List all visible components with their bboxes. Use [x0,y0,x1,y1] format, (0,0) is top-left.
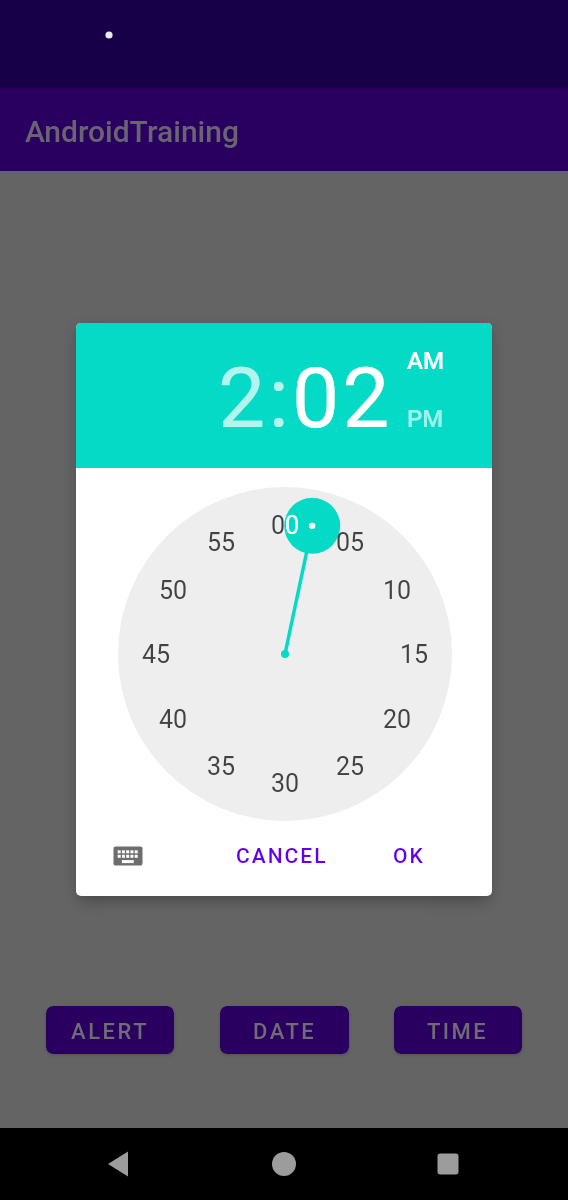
button[interactable] [260,1140,308,1188]
button[interactable] [109,837,147,875]
button[interactable]: PM [400,404,450,434]
staticText: PM [407,405,444,433]
staticText: 15 [400,640,429,669]
button[interactable]: TIME [394,1006,522,1054]
button[interactable] [95,1140,143,1188]
button[interactable]: OK [371,833,447,879]
staticText: OK [393,844,425,869]
staticText: AM [407,347,444,375]
button[interactable]: CANCEL [226,833,338,879]
staticText: AndroidTraining [25,114,239,149]
button[interactable]: DATE [220,1006,349,1054]
staticText: 20 [383,705,412,734]
staticText: 35 [207,752,236,781]
staticText: 05 [336,528,365,557]
staticText: 10 [383,576,412,605]
button[interactable]: AM [400,346,450,376]
button[interactable] [424,1140,472,1188]
staticText: 45 [142,640,171,669]
staticText: 55 [207,528,236,557]
staticText: CANCEL [236,844,328,869]
staticText: 40 [159,705,188,734]
staticText: 25 [336,752,365,781]
staticText: 50 [159,576,188,605]
staticText: ALERT [71,1019,150,1045]
button[interactable]: ALERT [46,1006,174,1054]
staticText: TIME [427,1019,489,1045]
staticText: DATE [253,1019,317,1045]
staticText: 00 [271,511,300,540]
staticText: 30 [271,769,300,798]
staticText: 2:02 [218,349,393,447]
